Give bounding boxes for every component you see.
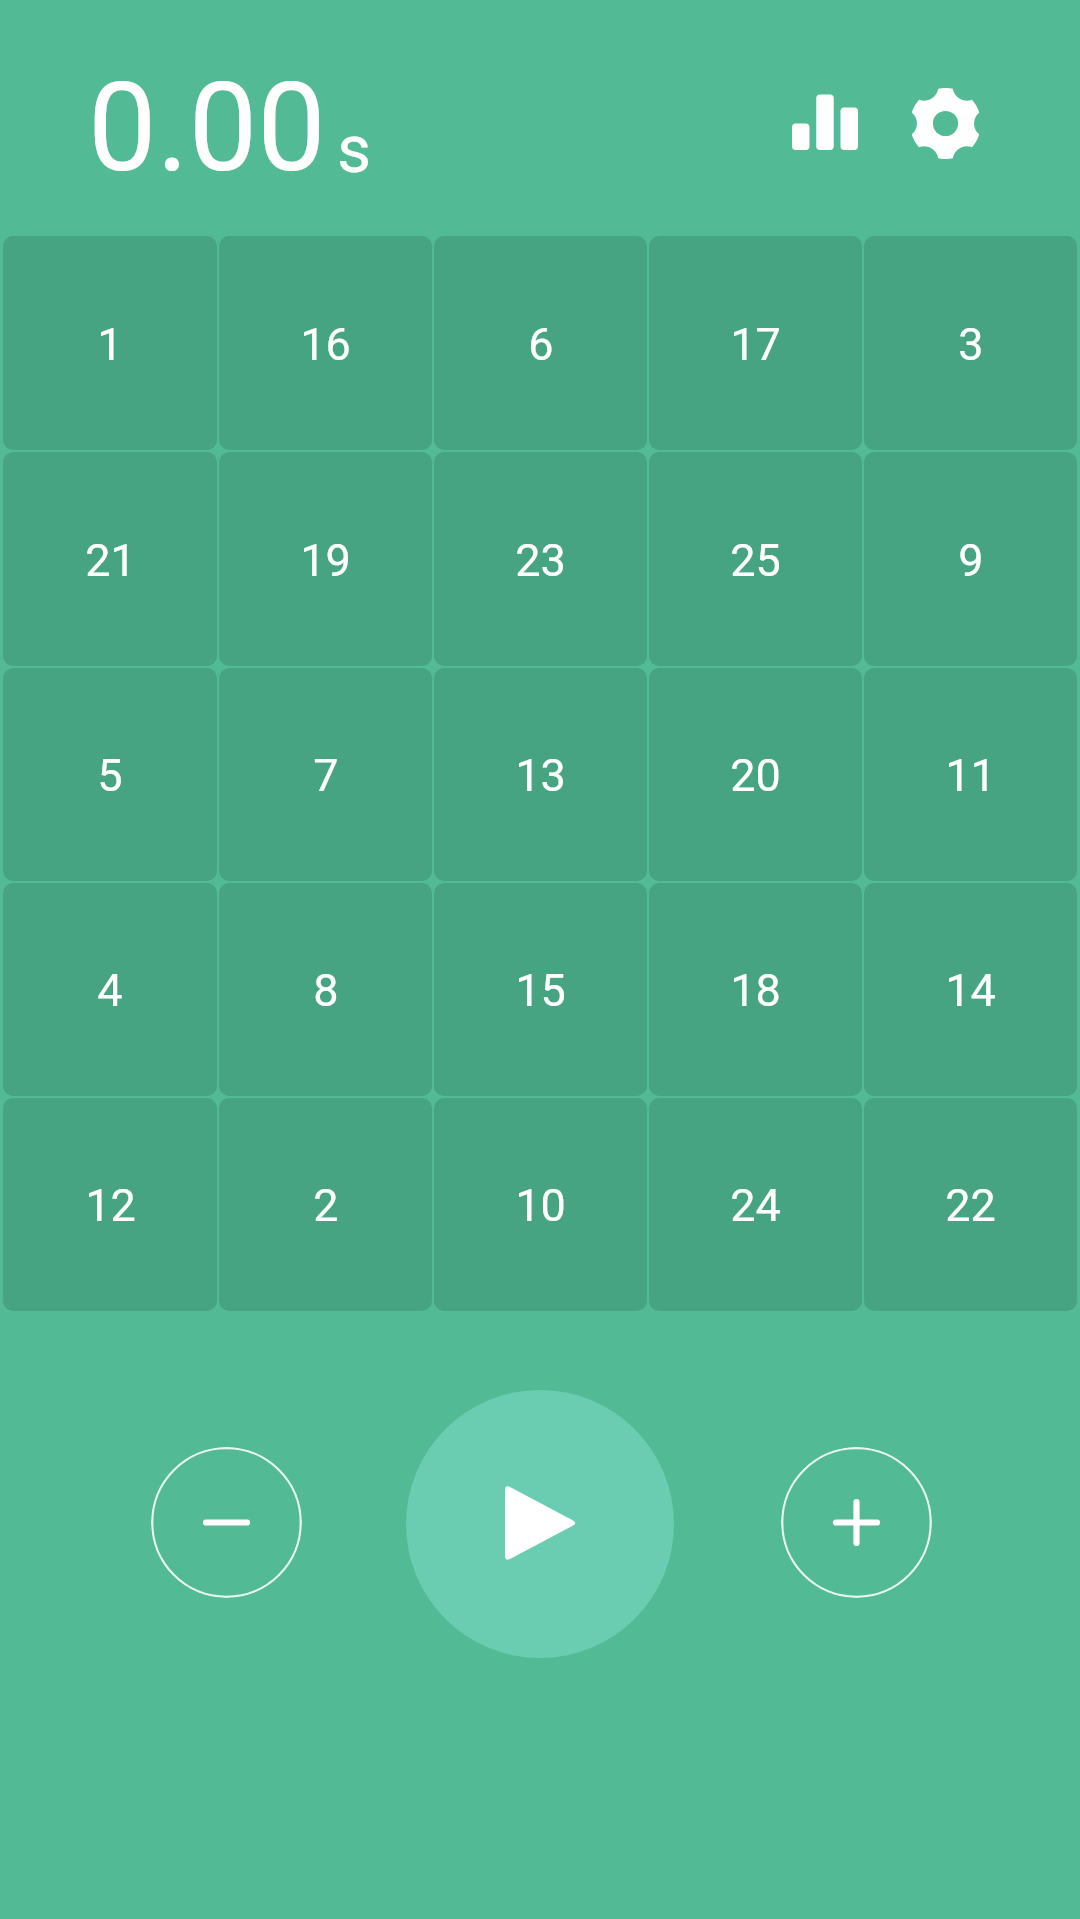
staticText: 4	[97, 964, 123, 1017]
button[interactable]: 25	[649, 452, 862, 666]
staticText: 0.00	[88, 57, 326, 200]
button[interactable]: 22	[864, 1098, 1077, 1311]
button[interactable]: 16	[219, 236, 432, 450]
button[interactable]: Fewer rows	[151, 1447, 302, 1598]
button[interactable]: 2	[219, 1098, 432, 1311]
button[interactable]: 8	[219, 883, 432, 1096]
staticText: 17	[730, 318, 781, 371]
button[interactable]: 5	[3, 668, 217, 881]
staticText: 10	[515, 1179, 566, 1232]
button[interactable]: 24	[649, 1098, 862, 1311]
staticText: 19	[300, 534, 351, 587]
button[interactable]: 9	[864, 452, 1077, 666]
button[interactable]: 4	[3, 883, 217, 1096]
staticText: 13	[515, 749, 566, 802]
staticText: 15	[515, 964, 566, 1017]
staticText: 6	[528, 318, 554, 371]
button[interactable]: 6	[434, 236, 647, 450]
button[interactable]: More rows	[781, 1447, 932, 1598]
staticText: 11	[945, 749, 996, 802]
button[interactable]: 12	[3, 1098, 217, 1311]
staticText: 21	[85, 534, 136, 587]
staticText: 3	[958, 318, 984, 371]
button[interactable]: 11	[864, 668, 1077, 881]
button[interactable]: 20	[649, 668, 862, 881]
staticText: s	[337, 111, 372, 188]
button[interactable]: Statistics	[765, 67, 885, 177]
button[interactable]: 15	[434, 883, 647, 1096]
staticText: 1	[97, 318, 123, 371]
staticText: 16	[300, 318, 351, 371]
button[interactable]: 3	[864, 236, 1077, 450]
staticText: 20	[730, 749, 781, 802]
staticText: 9	[958, 534, 984, 587]
staticText: 22	[945, 1179, 996, 1232]
button[interactable]: Start	[406, 1390, 674, 1658]
staticText: 7	[313, 749, 339, 802]
button[interactable]: 14	[864, 883, 1077, 1096]
staticText: 24	[730, 1179, 781, 1232]
button[interactable]: 10	[434, 1098, 647, 1311]
staticText: 5	[97, 749, 123, 802]
button[interactable]: 18	[649, 883, 862, 1096]
button[interactable]: 23	[434, 452, 647, 666]
button[interactable]: Settings	[889, 63, 1001, 183]
staticText: 14	[945, 964, 996, 1017]
button[interactable]: 7	[219, 668, 432, 881]
staticText: 2	[313, 1179, 339, 1232]
button[interactable]: 13	[434, 668, 647, 881]
button[interactable]: 19	[219, 452, 432, 666]
staticText: 8	[313, 964, 339, 1017]
button[interactable]: 21	[3, 452, 217, 666]
button[interactable]: 17	[649, 236, 862, 450]
button[interactable]: 1	[3, 236, 217, 450]
staticText: 18	[730, 964, 781, 1017]
staticText: 23	[515, 534, 566, 587]
staticText: 12	[85, 1179, 136, 1232]
staticText: 25	[730, 534, 781, 587]
